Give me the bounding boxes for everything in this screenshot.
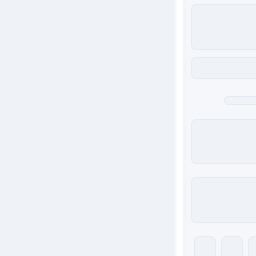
button[interactable]: Key — [248, 236, 256, 256]
button[interactable]: Message — [224, 96, 256, 105]
